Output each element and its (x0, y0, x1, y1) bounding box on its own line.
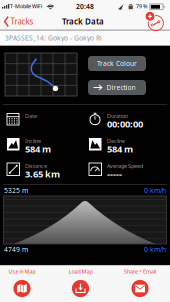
staticText: Track Colour (97, 59, 137, 68)
staticText: 0 km/h (144, 245, 166, 254)
staticText: 00:00:00 (107, 118, 143, 130)
staticText: Average Speed (107, 162, 143, 170)
staticText: 5325 m (4, 186, 28, 195)
staticText: 584 m (25, 143, 51, 155)
staticText: 584 m (107, 143, 133, 155)
staticText: Track Data (62, 16, 104, 27)
button[interactable] (145, 11, 164, 31)
staticText: 3PASSES_14: Gokyo - Gokyo Ri (5, 33, 102, 42)
staticText: Distance (25, 162, 47, 170)
staticText: Use in Map (8, 268, 35, 275)
button[interactable]: Use in Map (0, 267, 47, 301)
staticText: 3.65 km (25, 168, 60, 180)
staticText: 79 % (136, 3, 147, 10)
staticText: Direction (106, 83, 135, 92)
staticText: T-Mobile WiFi (10, 3, 42, 10)
staticText: 4749 m (4, 245, 28, 254)
button[interactable]: Direction (88, 80, 146, 95)
staticText: Decline (107, 137, 125, 145)
staticText: Share + Email (124, 268, 156, 275)
staticText: ----- (107, 168, 122, 180)
staticText: Load Map (68, 268, 92, 275)
button[interactable]: Track Colour (88, 56, 146, 71)
staticText: Duration (107, 112, 128, 120)
button[interactable]: Tracks (1, 12, 41, 30)
staticText: 20:48 (76, 2, 94, 11)
button[interactable]: Load Map (55, 267, 105, 301)
staticText: Tracks (10, 16, 33, 27)
staticText: Incline (25, 137, 41, 145)
button[interactable]: Share + Email (115, 267, 165, 301)
staticText: 0 km/h (144, 186, 166, 195)
staticText: Date (25, 112, 37, 120)
button[interactable]: 3PASSES_14: Gokyo - Gokyo Ri (0, 30, 170, 45)
